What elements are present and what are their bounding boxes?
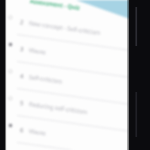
button[interactable]: Completed — [8, 123, 13, 128]
button[interactable]: 4 — [19, 72, 24, 80]
button[interactable]: Reducing self-criticism — [28, 100, 88, 116]
staticText: Waves — [28, 46, 46, 56]
staticText: 2 — [19, 18, 24, 26]
button[interactable]: 5 — [19, 99, 24, 107]
button[interactable]: Self-criticism — [28, 73, 63, 86]
staticText: Reducing self-criticism — [28, 100, 88, 116]
button[interactable]: 2 — [19, 18, 24, 26]
staticText: 6 — [19, 126, 24, 134]
button[interactable]: 6 — [19, 126, 24, 134]
staticText: 5 — [19, 99, 24, 107]
staticText: 3 — [19, 45, 24, 53]
button[interactable]: Assessment - Quiz — [29, 0, 81, 12]
button[interactable]: New concept - Self-criticism — [28, 19, 102, 37]
staticText: 4 — [19, 72, 24, 80]
button[interactable]: Waves — [28, 127, 46, 137]
staticText: New concept - Self-criticism — [28, 19, 102, 37]
staticText: Waves — [28, 127, 46, 137]
button[interactable]: 3 — [19, 45, 24, 53]
staticText: Self-criticism — [28, 73, 63, 86]
button[interactable]: Waves — [28, 46, 46, 56]
staticText: Assessment - Quiz — [29, 0, 81, 12]
button[interactable]: Completed — [8, 42, 13, 47]
